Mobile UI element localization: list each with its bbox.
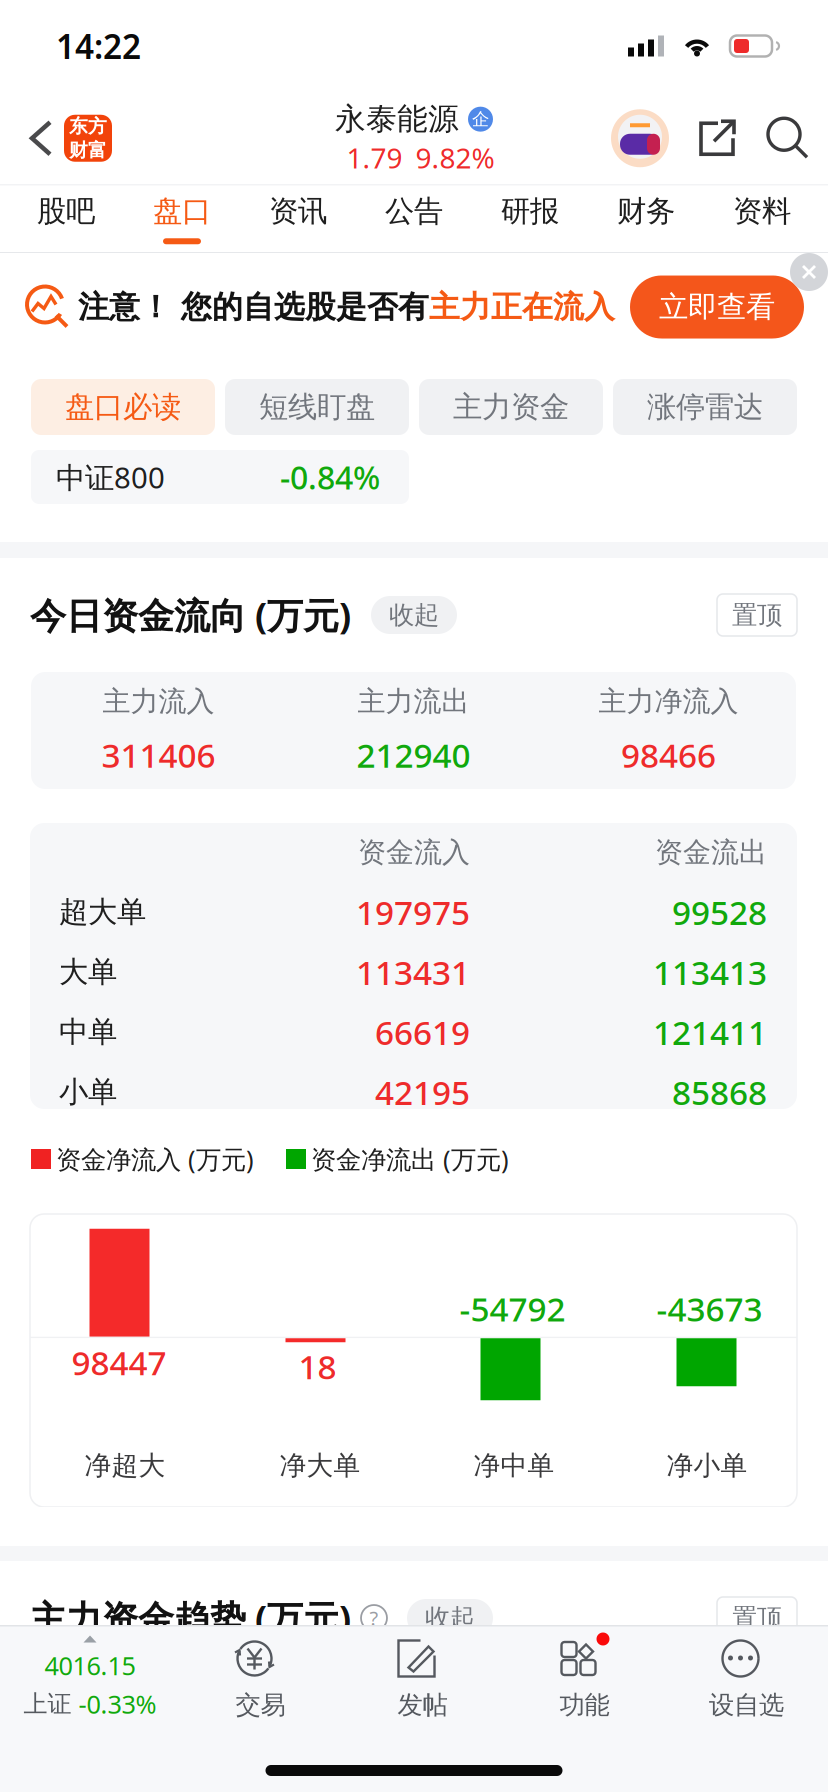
staticText: 今日资金流向 (万元) bbox=[30, 591, 351, 639]
staticText: 发帖 bbox=[397, 1689, 447, 1721]
staticText: -54792 bbox=[459, 1286, 565, 1331]
staticText: 大单 bbox=[59, 954, 117, 990]
staticText: 超大单 bbox=[59, 894, 146, 930]
button[interactable]: Back bbox=[0, 115, 64, 161]
button[interactable]: 功能 bbox=[503, 1626, 665, 1731]
staticText: -0.33% bbox=[78, 1687, 156, 1721]
staticText: 置顶 bbox=[732, 599, 782, 630]
staticText: 收起 bbox=[425, 1602, 475, 1633]
staticText: 中证800 bbox=[56, 457, 165, 496]
staticText: 197975 bbox=[356, 890, 470, 934]
staticText: 资讯 bbox=[269, 193, 327, 229]
button[interactable]: 置顶 bbox=[717, 594, 797, 636]
staticText: 中单 bbox=[59, 1014, 117, 1050]
button[interactable]: 东方财富 bbox=[64, 115, 112, 162]
staticText: 主力流出 bbox=[357, 684, 469, 719]
staticText: -0.84% bbox=[280, 456, 380, 498]
staticText: 净中单 bbox=[473, 1449, 554, 1482]
staticText: 研报 bbox=[501, 193, 559, 229]
staticText: 113413 bbox=[653, 950, 767, 994]
staticText: 注意！ bbox=[78, 288, 171, 326]
staticText: 净大单 bbox=[279, 1449, 360, 1482]
button[interactable]: 股吧 bbox=[8, 185, 124, 252]
staticText: 功能 bbox=[559, 1689, 609, 1721]
button[interactable]: 公告 bbox=[356, 185, 472, 252]
staticText: 盘口必读 bbox=[65, 389, 181, 425]
staticText: 涨停雷达 bbox=[647, 389, 763, 425]
staticText: 主力净流入 bbox=[598, 684, 738, 719]
staticText: 您的自选股是否有 bbox=[181, 288, 429, 326]
staticText: 设自选 bbox=[709, 1689, 784, 1721]
staticText: 4016.15 bbox=[44, 1648, 135, 1682]
staticText: 212940 bbox=[356, 733, 470, 777]
staticText: 85868 bbox=[672, 1070, 767, 1114]
staticText: 311406 bbox=[101, 733, 215, 777]
staticText: 交易 bbox=[235, 1689, 285, 1721]
staticText: 东方 bbox=[69, 115, 107, 138]
staticText: 公告 bbox=[385, 193, 443, 229]
staticText: 主力资金 bbox=[453, 389, 569, 425]
staticText: 98447 bbox=[71, 1340, 166, 1384]
button[interactable]: 财务 bbox=[588, 185, 704, 252]
staticText: 主力流入 bbox=[102, 684, 214, 719]
button[interactable]: 交易 bbox=[179, 1626, 341, 1731]
button[interactable]: 收起 bbox=[371, 596, 457, 634]
button[interactable]: 资料 bbox=[704, 185, 820, 252]
button[interactable]: 盘口 bbox=[124, 185, 240, 252]
staticText: 14:22 bbox=[56, 24, 141, 68]
staticText: 121411 bbox=[653, 1010, 767, 1054]
staticText: 资金流出 bbox=[655, 835, 767, 870]
staticText: 资金净流入 (万元) bbox=[56, 1142, 254, 1176]
staticText: 98466 bbox=[621, 733, 716, 777]
button[interactable]: 中证800 bbox=[31, 450, 409, 504]
staticText: 资金净流出 (万元) bbox=[311, 1142, 509, 1176]
button[interactable]: Share bbox=[669, 116, 765, 160]
button[interactable]: 置顶 bbox=[717, 1597, 797, 1639]
staticText: 盘口 bbox=[153, 193, 211, 229]
button[interactable]: 资讯 bbox=[240, 185, 356, 252]
button[interactable]: 研报 bbox=[472, 185, 588, 252]
button[interactable]: 发帖 bbox=[341, 1626, 503, 1731]
staticText: 资料 bbox=[733, 193, 791, 229]
button[interactable]: Close ad bbox=[790, 253, 828, 291]
staticText: 99528 bbox=[672, 890, 767, 934]
staticText: 113431 bbox=[356, 950, 470, 994]
staticText: 小单 bbox=[59, 1074, 117, 1110]
button[interactable]: 上证指数 bbox=[0, 1626, 179, 1731]
staticText: 净小单 bbox=[666, 1449, 747, 1482]
button[interactable]: 涨停雷达 bbox=[613, 379, 797, 435]
staticText: 置顶 bbox=[732, 1602, 782, 1633]
staticText: 永泰能源 bbox=[335, 100, 459, 138]
staticText: 66619 bbox=[375, 1010, 470, 1054]
button[interactable]: 盘口必读 bbox=[31, 379, 215, 435]
button[interactable]: 设自选 bbox=[665, 1626, 827, 1731]
staticText: 1.79 bbox=[346, 139, 402, 176]
staticText: -43673 bbox=[656, 1286, 762, 1331]
staticText: 9.82% bbox=[415, 139, 494, 176]
staticText: 财务 bbox=[617, 193, 675, 229]
staticText: 收起 bbox=[389, 599, 439, 630]
staticText: 股吧 bbox=[37, 193, 95, 229]
button[interactable]: 收起 bbox=[407, 1599, 493, 1637]
staticText: 财富 bbox=[69, 139, 107, 162]
button[interactable]: 立即查看 bbox=[630, 275, 804, 338]
staticText: ? bbox=[369, 1605, 378, 1631]
staticText: 主力资金趋势 (万元) bbox=[30, 1594, 351, 1642]
staticText: 净超大 bbox=[84, 1449, 165, 1482]
staticText: 资金流入 bbox=[358, 835, 470, 870]
button[interactable]: 短线盯盘 bbox=[225, 379, 409, 435]
button[interactable]: 主力资金 bbox=[419, 379, 603, 435]
staticText: 企 bbox=[472, 108, 489, 130]
staticText: 42195 bbox=[375, 1070, 470, 1114]
staticText: 短线盯盘 bbox=[259, 389, 375, 425]
button[interactable]: AI assistant bbox=[611, 109, 669, 167]
staticText: 18 bbox=[298, 1344, 336, 1388]
staticText: 主力正在流入 bbox=[429, 288, 615, 326]
staticText: 立即查看 bbox=[659, 289, 775, 325]
staticText: 上证 bbox=[23, 1689, 71, 1719]
button[interactable]: Search bbox=[765, 115, 828, 161]
